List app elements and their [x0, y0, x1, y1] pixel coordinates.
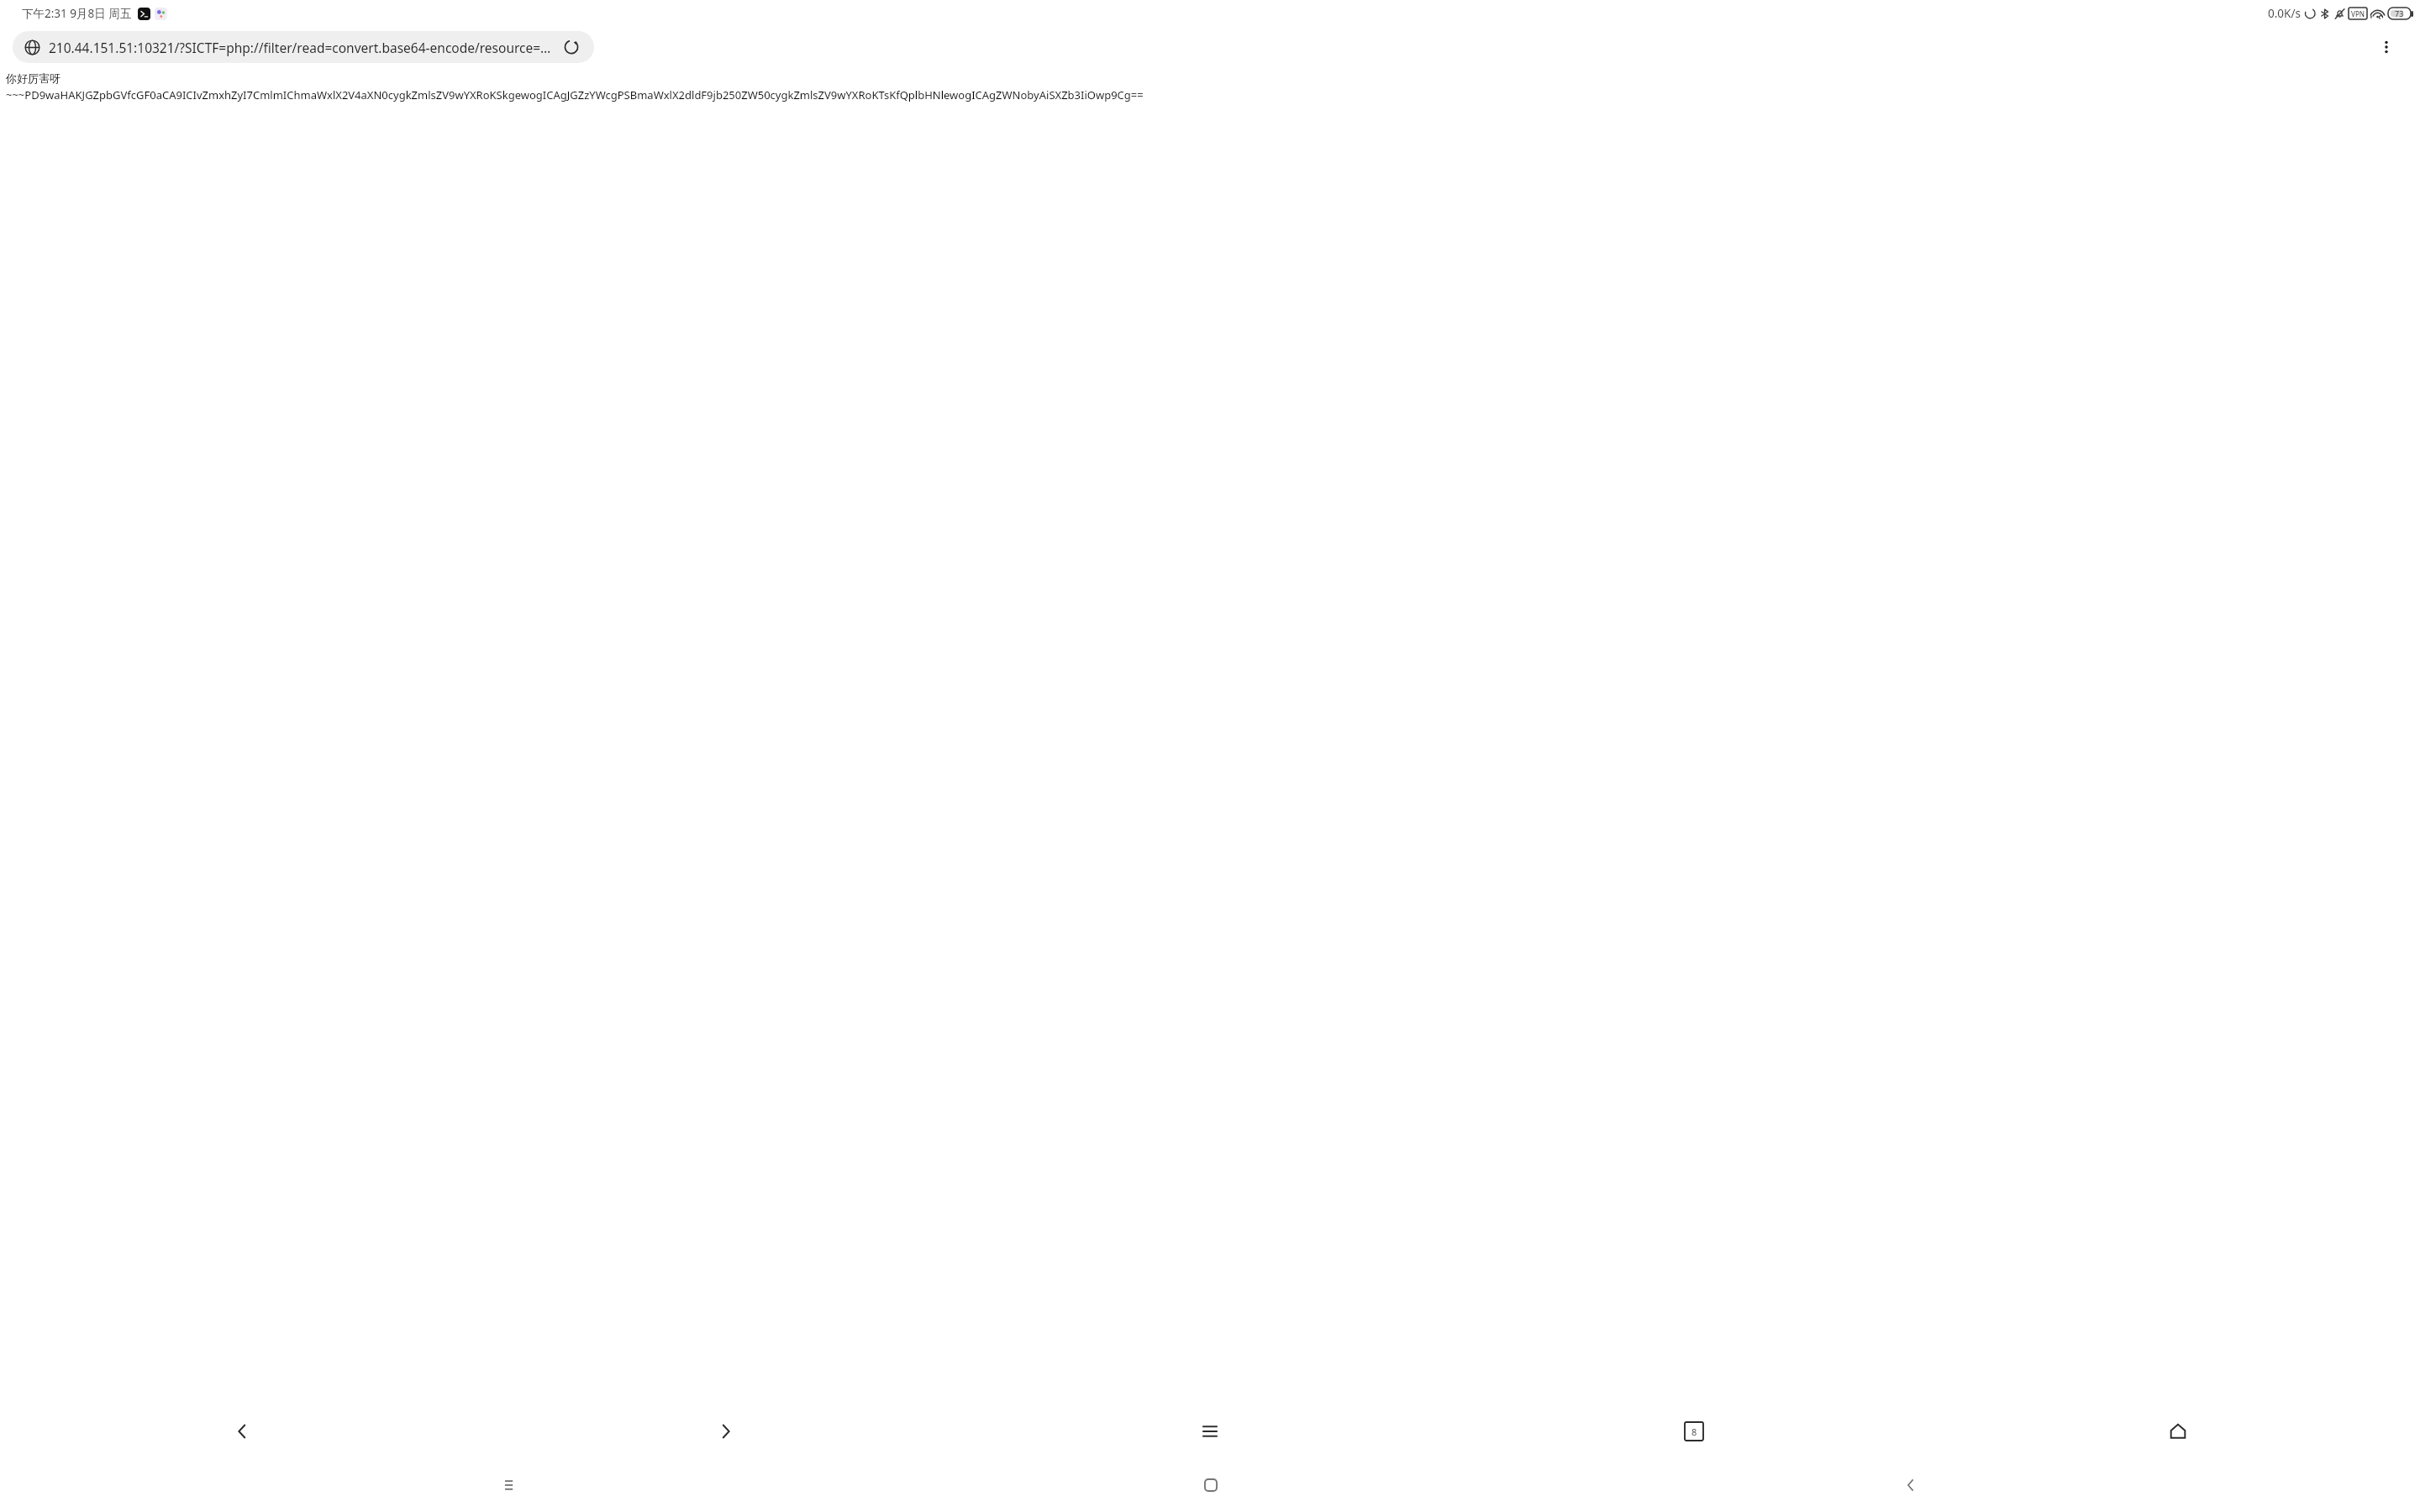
button[interactable]: Back [0, 1404, 484, 1458]
staticText: 210.44.151.51:10321/?SICTF=php://filter/… [49, 39, 554, 56]
staticText: VPN [2351, 9, 2365, 18]
button[interactable]: Recent apps [260, 1458, 760, 1512]
button[interactable]: More options [2370, 30, 2403, 64]
button[interactable]: Menu [968, 1404, 1452, 1458]
button[interactable]: Tabs [1452, 1404, 1936, 1458]
staticText: 你好厉害呀 [6, 71, 60, 85]
staticText: 73 [2395, 8, 2404, 18]
staticText: 0.0K/s [2268, 6, 2301, 21]
button[interactable]: Back [1660, 1458, 2160, 1512]
button[interactable]: Reload page [560, 36, 582, 58]
staticText: 下午2:31 9月8日 周五 [22, 6, 132, 21]
button[interactable]: 210.44.151.51:10321/?SICTF=php://filter/… [13, 31, 594, 63]
button[interactable]: Home [1936, 1404, 2420, 1458]
staticText: ~~~PD9waHAKJGZpbGVfcGF0aCA9ICIvZmxhZyI7C… [6, 87, 1144, 102]
button[interactable]: Home [960, 1458, 1460, 1512]
button[interactable]: Forward [484, 1404, 968, 1458]
staticText: 8 [1691, 1425, 1697, 1438]
